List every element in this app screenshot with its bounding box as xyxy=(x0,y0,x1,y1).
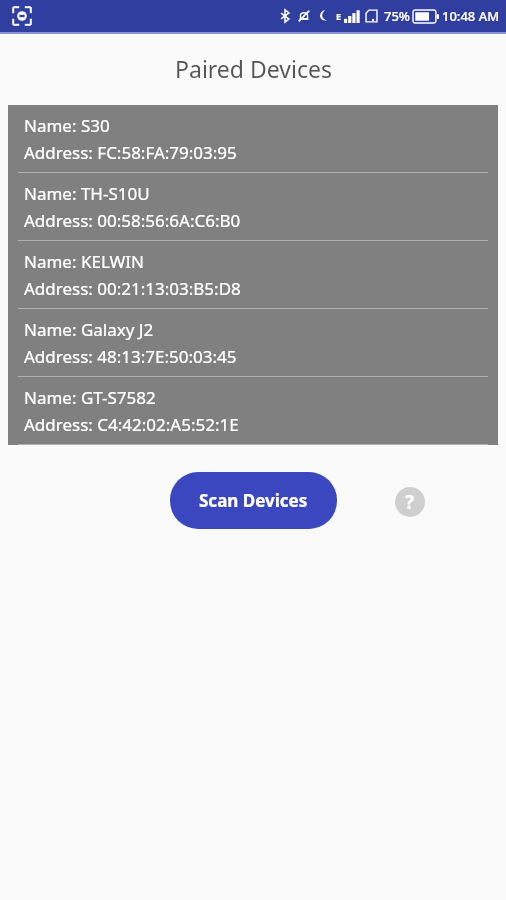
staticText: Address: FC:58:FA:79:03:95 xyxy=(24,141,237,164)
staticText: Name: KELWIN xyxy=(24,250,144,273)
button[interactable]: Name: S30 xyxy=(8,105,498,173)
staticText: Name: TH-S10U xyxy=(24,182,150,205)
button[interactable]: Name: GT-S7582 xyxy=(8,377,498,445)
button[interactable]: Name: KELWIN xyxy=(8,241,498,309)
staticText: 10:48 AM xyxy=(442,7,500,25)
staticText: Paired Devices xyxy=(175,53,332,84)
button[interactable]: Scan Devices xyxy=(170,472,337,529)
button[interactable]: Name: Galaxy J2 xyxy=(8,309,498,377)
button[interactable]: Help xyxy=(395,487,425,517)
staticText: Address: C4:42:02:A5:52:1E xyxy=(24,413,239,436)
staticText: Address: 00:21:13:03:B5:D8 xyxy=(24,277,241,300)
staticText: Address: 00:58:56:6A:C6:B0 xyxy=(24,209,241,232)
staticText: 75% xyxy=(384,7,410,25)
staticText: Scan Devices xyxy=(199,489,308,512)
staticText: Name: S30 xyxy=(24,114,110,137)
staticText: E xyxy=(336,10,342,22)
staticText: Name: GT-S7582 xyxy=(24,386,156,409)
staticText: ? xyxy=(405,489,415,515)
staticText: Name: Galaxy J2 xyxy=(24,318,154,341)
staticText: Address: 48:13:7E:50:03:45 xyxy=(24,345,237,368)
button[interactable]: Name: TH-S10U xyxy=(8,173,498,241)
